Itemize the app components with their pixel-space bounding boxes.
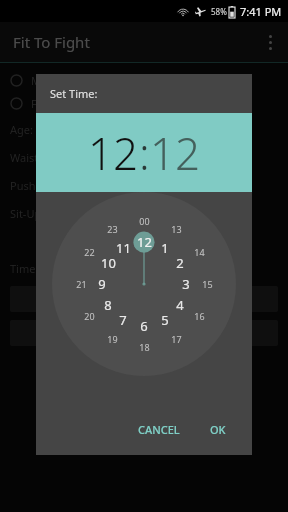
staticText: 21 xyxy=(76,278,87,290)
staticText: Select Run Type xyxy=(103,233,185,248)
staticText: 22 xyxy=(84,246,95,258)
staticText: : xyxy=(139,123,150,183)
staticText: Waist: xyxy=(10,150,42,165)
staticText: Age: xyxy=(10,122,33,137)
staticText: CANCEL xyxy=(138,422,180,437)
button[interactable]: 12 xyxy=(52,192,236,376)
staticText: 15 xyxy=(202,278,213,290)
staticText: 1 xyxy=(161,239,169,257)
button[interactable]: OK xyxy=(200,414,236,445)
staticText: Time: xyxy=(10,261,39,276)
staticText: 13 xyxy=(171,223,182,235)
staticText: 20 xyxy=(84,310,95,322)
staticText: 58% xyxy=(211,6,227,17)
staticText: 17 xyxy=(171,333,182,345)
staticText: 19 xyxy=(107,333,118,345)
staticText: 10 xyxy=(101,254,116,272)
button[interactable]: START OVER xyxy=(10,320,278,346)
staticText: 7:41 PM xyxy=(240,4,282,19)
button[interactable]: 12 xyxy=(88,123,139,183)
staticText: Female xyxy=(31,96,69,111)
staticText: OK xyxy=(210,422,226,437)
staticText: 58% xyxy=(211,6,227,17)
staticText: 11 xyxy=(116,239,131,257)
button[interactable]: CANCEL xyxy=(128,414,190,445)
button[interactable]: TOTAL SCORE xyxy=(10,286,278,312)
staticText: 7 xyxy=(119,311,127,329)
staticText: START OVER xyxy=(115,326,173,340)
staticText: Push-Ups: xyxy=(10,178,63,193)
staticText: Set Time: xyxy=(50,86,98,101)
staticText: 3 xyxy=(182,275,190,293)
staticText: Sit-Ups: xyxy=(10,206,50,221)
button[interactable]: 12 xyxy=(150,123,201,183)
staticText: 00 xyxy=(139,215,150,227)
staticText: 2 xyxy=(176,254,184,272)
staticText: 12 xyxy=(137,233,152,251)
staticText: 8 xyxy=(104,296,112,314)
staticText: Fit To Fight xyxy=(13,32,90,52)
staticText: 4 xyxy=(176,296,184,314)
staticText: 16 xyxy=(194,310,205,322)
staticText: 18 xyxy=(139,341,150,353)
staticText: 14 xyxy=(194,246,205,258)
staticText: 23 xyxy=(107,223,118,235)
staticText: Male xyxy=(31,73,57,88)
button[interactable]: Female xyxy=(0,92,288,115)
staticText: 7:41 PM xyxy=(240,4,282,19)
staticText: 9 xyxy=(98,275,106,293)
button[interactable]: Male xyxy=(0,69,288,92)
button[interactable]: More options xyxy=(252,24,288,60)
staticText: 5 xyxy=(161,311,169,329)
staticText: 6 xyxy=(140,317,148,335)
